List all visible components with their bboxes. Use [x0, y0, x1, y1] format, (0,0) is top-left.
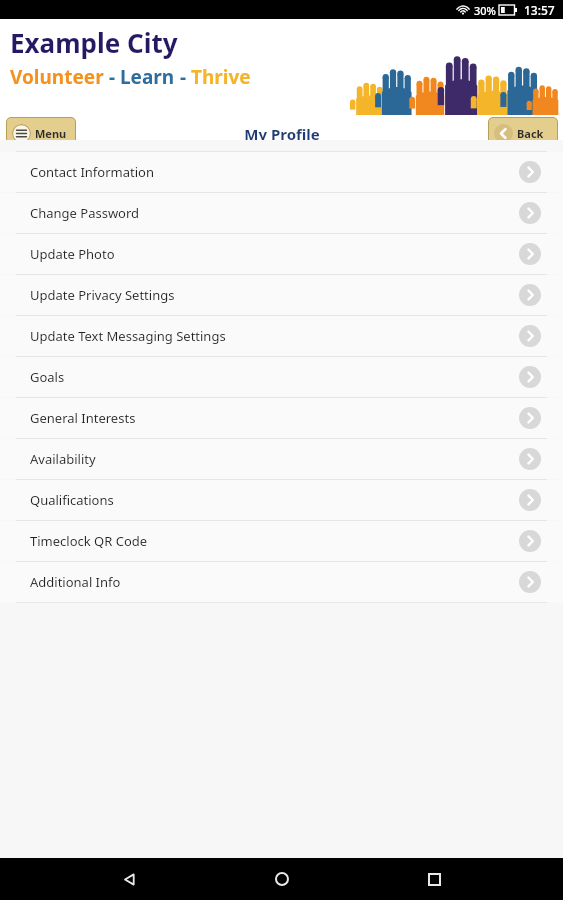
button[interactable]: Menu: [6, 117, 76, 150]
staticText: Availability: [30, 450, 96, 468]
button[interactable]: Qualifications: [0, 480, 563, 520]
staticText: Goals: [30, 368, 65, 386]
button[interactable]: Timeclock QR Code: [0, 521, 563, 561]
staticText: Example City: [10, 25, 178, 60]
button[interactable]: Contact Information: [0, 152, 563, 192]
staticText: My Profile: [244, 124, 320, 144]
staticText: Volunteer: [10, 64, 104, 90]
button[interactable]: General Interests: [0, 398, 563, 438]
button[interactable]: Update Privacy Settings: [0, 275, 563, 315]
staticText: 13:57: [524, 2, 555, 18]
button[interactable]: Availability: [0, 439, 563, 479]
button[interactable]: Update Text Messaging Settings: [0, 316, 563, 356]
staticText: Menu: [35, 126, 67, 141]
staticText: Update Text Messaging Settings: [30, 327, 226, 345]
staticText: Update Privacy Settings: [30, 286, 175, 304]
staticText: -: [104, 64, 120, 90]
staticText: Change Password: [30, 204, 140, 222]
staticText: 30%: [474, 3, 496, 18]
button[interactable]: Back: [105, 858, 153, 900]
staticText: Update Photo: [30, 245, 115, 263]
button[interactable]: Home: [258, 858, 306, 900]
staticText: Contact Information: [30, 163, 154, 181]
button[interactable]: Change Password: [0, 193, 563, 233]
staticText: General Interests: [30, 409, 136, 427]
button[interactable]: Goals: [0, 357, 563, 397]
staticText: Back: [517, 126, 544, 141]
staticText: Timeclock QR Code: [30, 532, 148, 550]
staticText: Additional Info: [30, 573, 121, 591]
button[interactable]: Recent apps: [410, 858, 458, 900]
staticText: Learn: [120, 64, 175, 90]
staticText: -: [175, 64, 191, 90]
button[interactable]: Additional Info: [0, 562, 563, 602]
button[interactable]: Update Photo: [0, 234, 563, 274]
staticText: Qualifications: [30, 491, 114, 509]
staticText: Thrive: [191, 64, 251, 90]
button[interactable]: Back: [488, 117, 558, 150]
